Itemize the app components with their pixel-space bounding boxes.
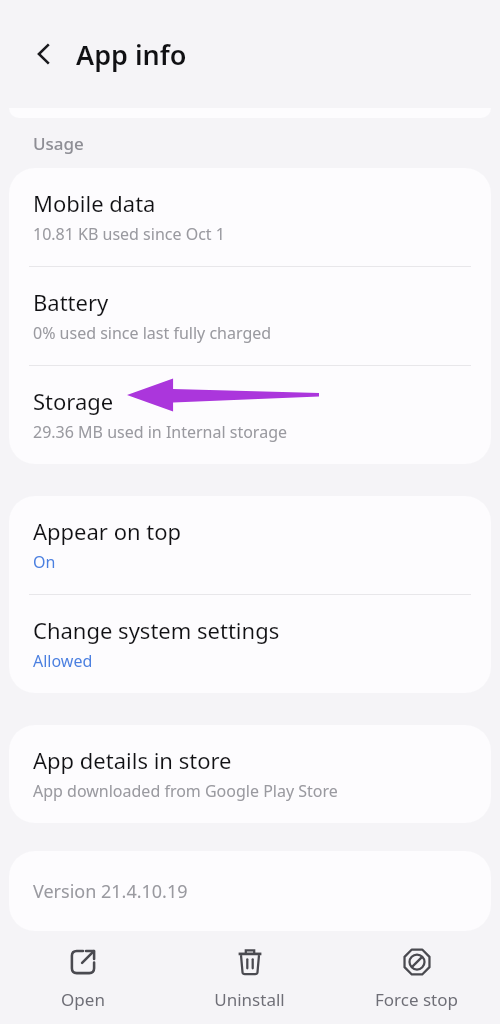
button[interactable]: Back [18, 28, 70, 80]
button[interactable]: Storage [9, 366, 491, 464]
staticText: App downloaded from Google Play Store [33, 780, 338, 802]
staticText: Change system settings [33, 615, 280, 645]
button[interactable]: App details in store [9, 725, 491, 823]
button[interactable]: Open [0, 931, 166, 1024]
staticText: 10.81 KB used since Oct 1 [33, 223, 225, 245]
staticText: Version 21.4.10.19 [33, 879, 188, 904]
staticText: Storage [33, 386, 114, 416]
button[interactable]: Uninstall [166, 931, 333, 1024]
staticText: Uninstall [214, 988, 285, 1011]
staticText: Force stop [375, 988, 458, 1011]
staticText: App details in store [33, 745, 232, 775]
staticText: Usage [33, 132, 84, 155]
button[interactable]: Appear on top [9, 496, 491, 594]
button[interactable]: Force stop [333, 931, 500, 1024]
staticText: Open [61, 988, 105, 1011]
button[interactable]: Battery [9, 267, 491, 365]
staticText: Allowed [33, 650, 93, 672]
button[interactable]: Mobile data [9, 168, 491, 266]
staticText: Appear on top [33, 516, 182, 546]
staticText: On [33, 551, 56, 573]
staticText: 29.36 MB used in Internal storage [33, 421, 288, 443]
staticText: Battery [33, 287, 109, 317]
staticText: App info [76, 36, 187, 73]
staticText: 0% used since last fully charged [33, 322, 272, 344]
staticText: Mobile data [33, 188, 156, 218]
button[interactable]: Change system settings [9, 595, 491, 693]
